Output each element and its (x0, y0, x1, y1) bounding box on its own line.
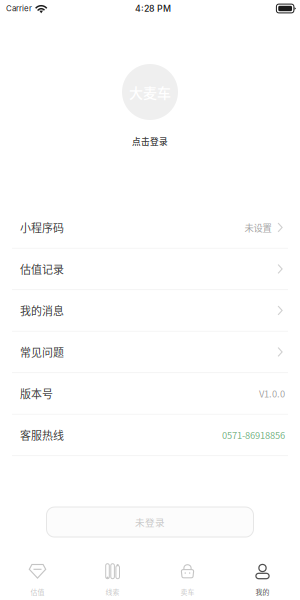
staticText: 我的消息 (20, 302, 64, 318)
button[interactable]: 我的 (225, 559, 300, 600)
staticText: 估值记录 (20, 261, 64, 277)
staticText: 版本号 (20, 385, 53, 401)
button[interactable]: 未登录 (46, 507, 253, 537)
staticText: 客服热线 (20, 427, 64, 443)
button[interactable]: 常见问题 (0, 331, 300, 373)
button[interactable]: 卖车 (150, 559, 225, 600)
staticText: 常见问题 (20, 344, 64, 360)
staticText: 大麦车 (129, 82, 171, 102)
button[interactable]: 小程序码 (0, 207, 300, 248)
button[interactable]: 客服热线 (0, 414, 300, 456)
button[interactable]: 版本号 (0, 373, 300, 414)
staticText: 线索 (105, 587, 119, 597)
button[interactable]: 估值记录 (0, 248, 300, 290)
staticText: 未设置 (244, 221, 271, 234)
staticText: 估值 (30, 587, 44, 597)
staticText: 未登录 (135, 515, 165, 529)
button[interactable]: 我的消息 (0, 290, 300, 331)
staticText: 卖车 (180, 587, 194, 597)
staticText: V1.0.0 (259, 387, 285, 400)
button[interactable]: 线索 (75, 559, 150, 600)
button[interactable]: 大麦车 (122, 64, 178, 147)
staticText: 我的 (255, 587, 269, 597)
staticText: Carrier (6, 4, 32, 13)
button[interactable]: 估值 (0, 559, 75, 600)
staticText: 点击登录 (132, 135, 168, 147)
staticText: 0571-86918856 (222, 428, 285, 442)
staticText: 小程序码 (20, 219, 64, 235)
staticText: 4:28 PM (135, 3, 171, 14)
